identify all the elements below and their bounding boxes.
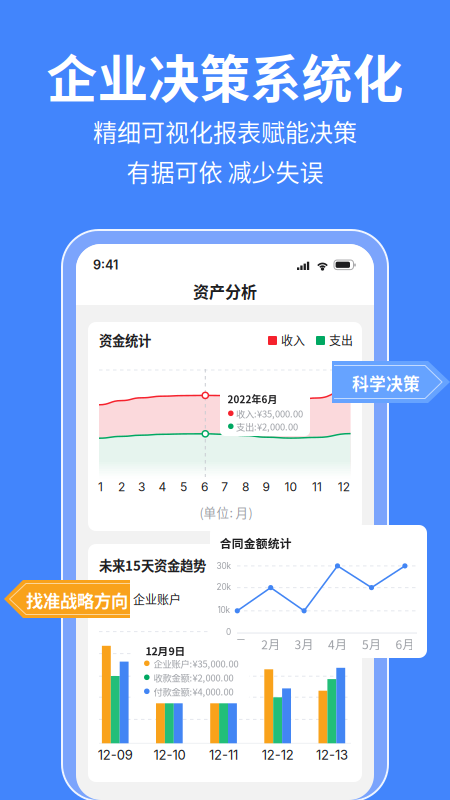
staticText: 企业账户:¥35,000.00	[153, 657, 238, 670]
staticText: 6月	[395, 635, 414, 653]
staticText: 12-11	[209, 747, 238, 763]
staticText: 7	[221, 480, 228, 494]
staticText: 精细可视化报表赋能决策	[93, 114, 357, 148]
staticText: 10	[284, 480, 297, 494]
staticText: 12月9日	[145, 643, 185, 658]
staticText: 9	[262, 480, 269, 494]
staticText: 12	[338, 480, 350, 494]
staticText: 4	[159, 480, 167, 494]
staticText: 付款金额:¥4,000.00	[153, 685, 233, 698]
staticText: 找准战略方向	[26, 587, 128, 613]
staticText: 2022年6月	[227, 392, 277, 406]
staticText: 企业决策系统化	[46, 39, 403, 113]
staticText: 30k	[216, 561, 231, 571]
staticText: 付款金额	[292, 590, 340, 608]
staticText: 12-09	[98, 747, 133, 763]
staticText: 收款金额	[224, 590, 272, 608]
staticText: 5	[180, 480, 187, 494]
staticText: 支出	[329, 331, 353, 349]
staticText: 资产分析	[193, 279, 257, 303]
staticText: 1	[98, 480, 103, 494]
staticText: 0	[226, 627, 231, 637]
staticText: 8	[242, 480, 249, 494]
staticText: 9:41	[93, 257, 118, 273]
staticText: 3	[138, 480, 145, 494]
staticText: (单位: 月)	[199, 503, 252, 521]
staticText: 支出:¥2,000.00	[236, 420, 298, 433]
staticText: 收入:¥35,000.00	[236, 407, 303, 420]
staticText: 2月	[261, 635, 280, 653]
staticText: 6	[201, 480, 208, 494]
staticText: 3月	[295, 635, 314, 653]
staticText: 合同金额统计	[220, 534, 292, 551]
staticText: 2	[118, 480, 125, 494]
staticText: 1月	[228, 635, 247, 653]
staticText: 10k	[217, 605, 230, 615]
staticText: 5月	[362, 635, 381, 653]
staticText: 收款金额:¥2,000.00	[153, 671, 233, 684]
staticText: 企业账户	[133, 590, 181, 608]
staticText: 有据可依 减少失误	[126, 154, 323, 188]
staticText: 12-10	[153, 747, 185, 763]
staticText: 收入	[281, 331, 305, 349]
staticText: 未来15天资金趋势	[99, 555, 206, 575]
staticText: 4月	[328, 635, 347, 653]
staticText: 科学决策	[352, 371, 420, 395]
staticText: 12-12	[262, 747, 294, 763]
staticText: 20k	[216, 582, 231, 592]
staticText: 11	[312, 480, 322, 494]
staticText: 12-13	[316, 747, 348, 763]
staticText: 资金统计	[99, 330, 151, 350]
